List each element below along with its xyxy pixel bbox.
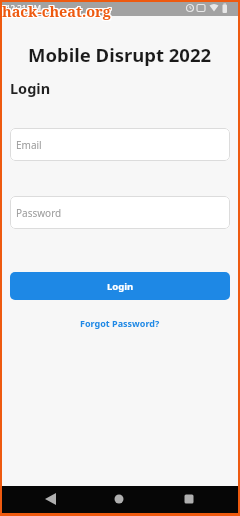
button[interactable]: Login bbox=[10, 272, 230, 300]
staticText: hack-cheat.org bbox=[3, 2, 112, 22]
staticText: hack-cheat.org bbox=[2, 1, 111, 21]
staticText: 12:31 AM bbox=[6, 3, 41, 14]
button[interactable]: Email bbox=[10, 128, 230, 161]
staticText: hack-cheat.org bbox=[1, 0, 110, 20]
button[interactable]: Password bbox=[10, 196, 230, 229]
staticText: hack-cheat.org bbox=[3, 1, 112, 21]
staticText: Login bbox=[107, 280, 134, 293]
staticText: Password bbox=[16, 206, 62, 220]
staticText: hack-cheat.org bbox=[1, 2, 110, 22]
staticText: Mobile Disrupt 2022 bbox=[28, 42, 212, 67]
staticText: hack-cheat.org bbox=[1, 1, 110, 21]
staticText: Email bbox=[16, 138, 42, 152]
button[interactable]: Forgot Password? bbox=[80, 317, 160, 329]
staticText: Login bbox=[10, 78, 51, 98]
staticText: hack-cheat.org bbox=[2, 2, 111, 22]
staticText: hack-cheat.org bbox=[3, 0, 112, 20]
staticText: hack-cheat.org bbox=[2, 0, 111, 20]
